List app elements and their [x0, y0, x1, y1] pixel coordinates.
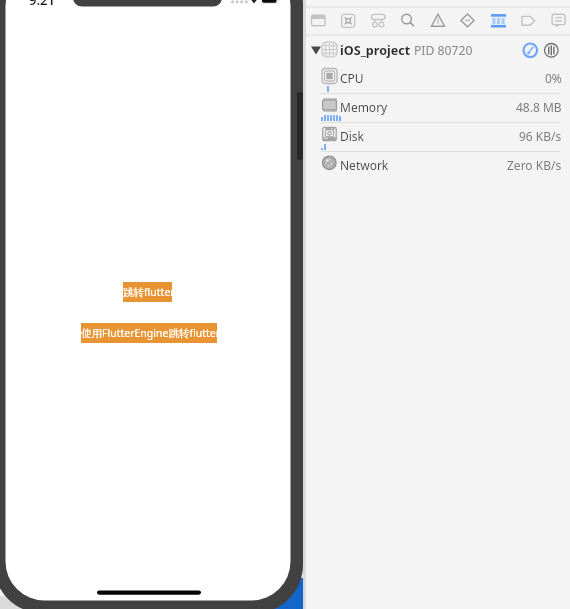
- button[interactable]: iOS_project: [306, 39, 570, 61]
- staticText: Zero KB/s: [507, 157, 562, 173]
- staticText: 0%: [545, 70, 562, 86]
- staticText: 48.8 MB: [516, 99, 562, 115]
- button[interactable]: Memory: [306, 95, 570, 118]
- staticText: PID 80720: [414, 42, 473, 59]
- button[interactable]: Disk: [306, 124, 570, 147]
- staticText: 跳转flutter: [123, 285, 172, 299]
- staticText: 9:21: [29, 0, 55, 9]
- staticText: CPU: [340, 70, 364, 86]
- button[interactable]: 使用FlutterEngine跳转flutter: [81, 323, 217, 343]
- staticText: 96 KB/s: [519, 128, 562, 144]
- staticText: Network: [340, 157, 389, 173]
- button[interactable]: 跳转flutter: [123, 282, 172, 302]
- staticText: iOS_project: [340, 42, 411, 59]
- button[interactable]: CPU: [306, 66, 570, 89]
- button[interactable]: Network: [306, 153, 570, 176]
- staticText: 使用FlutterEngine跳转flutter: [81, 326, 217, 340]
- staticText: Disk: [340, 128, 365, 144]
- staticText: Memory: [340, 99, 388, 115]
